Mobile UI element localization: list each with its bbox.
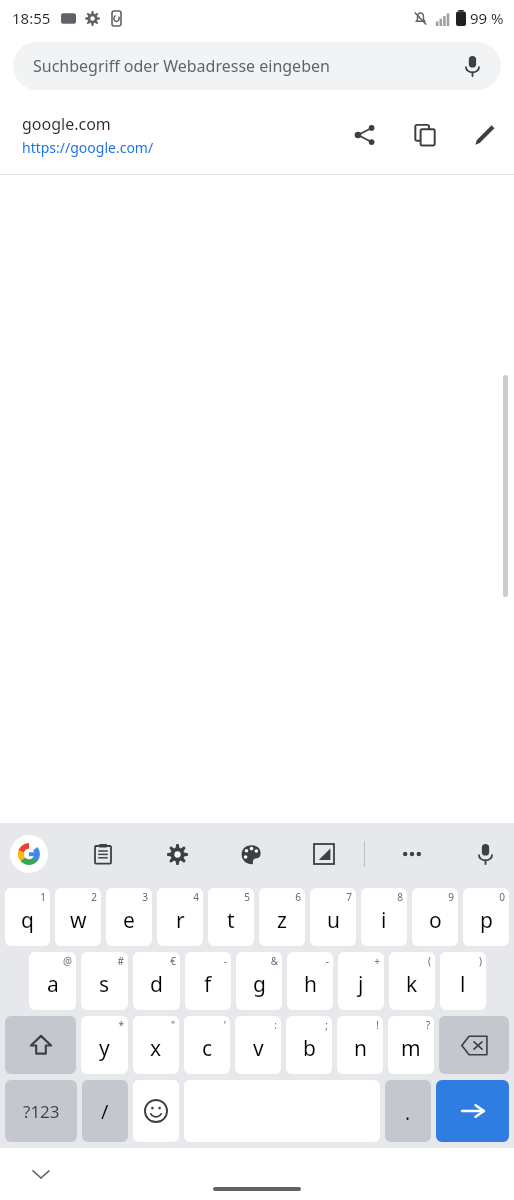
staticText: / [101,1098,109,1125]
staticText: ?123 [23,1100,60,1123]
button[interactable]: 6 [259,888,305,946]
staticText: l [460,970,466,999]
button[interactable]: ?123 [5,1080,77,1142]
staticText: ( [428,954,431,968]
staticText: r [176,906,185,935]
button[interactable]: Mehr [393,835,431,873]
staticText: ? [425,1018,430,1032]
staticText: o [429,906,442,935]
staticText: d [150,970,163,999]
staticText: n [354,1034,367,1063]
button[interactable]: 0 [463,888,509,946]
button[interactable]: Los [436,1080,509,1142]
button[interactable]: - [185,952,231,1010]
staticText: 18:55 [12,8,51,28]
button[interactable]: @ [29,952,76,1010]
staticText: 1 [40,890,46,904]
staticText: a [47,970,59,999]
staticText: 9 [448,890,454,904]
staticText: x [150,1034,162,1063]
staticText: - [223,954,227,968]
staticText: c [202,1034,213,1063]
staticText: - [325,954,329,968]
button[interactable]: ' [184,1016,230,1074]
button[interactable]: 9 [412,888,458,946]
staticText: . [405,1100,411,1126]
button[interactable]: Sprachsuche [457,51,487,81]
staticText: z [277,906,287,935]
staticText: u [327,906,340,935]
staticText: 5 [244,890,250,904]
button[interactable]: Einhandmodus [305,835,343,873]
staticText: v [253,1034,264,1063]
staticText: " [170,1018,175,1032]
staticText: w [70,906,87,935]
button[interactable]: Emoji [133,1080,179,1142]
button[interactable]: 1 [5,888,50,946]
button[interactable]: - [287,952,333,1010]
staticText: b [303,1034,316,1063]
staticText: 99 % [470,8,504,28]
staticText: : [274,1018,277,1032]
button[interactable]: # [81,952,128,1010]
staticText: h [304,970,317,999]
button[interactable]: ( [389,952,435,1010]
staticText: g [253,970,266,999]
staticText: t [227,906,235,935]
button[interactable]: ; [286,1016,332,1074]
button[interactable]: : [235,1016,281,1074]
staticText: ! [376,1018,379,1032]
button[interactable]: 7 [310,888,356,946]
staticText: https://google.com/ [22,138,154,157]
button[interactable]: Umschalttaste [5,1016,76,1074]
staticText: ; [325,1018,328,1032]
button[interactable]: * [81,1016,128,1074]
staticText: 6 [295,890,301,904]
staticText: € [170,954,176,968]
button[interactable]: Kopieren [406,116,444,154]
staticText: i [381,906,387,935]
button[interactable]: Google [10,835,48,873]
button[interactable]: Löschen [439,1016,509,1074]
button[interactable]: ! [337,1016,383,1074]
button[interactable]: Suchbegriff oder Webadresse eingeben [13,42,501,90]
staticText: j [358,970,364,999]
button[interactable]: + [338,952,384,1010]
button[interactable]: / [82,1080,128,1142]
button[interactable]: 4 [157,888,203,946]
staticText: s [99,970,110,999]
staticText: ) [479,954,482,968]
button[interactable]: google.com [0,96,514,174]
staticText: k [406,970,418,999]
staticText: 2 [91,890,97,904]
staticText: google.com [22,113,111,135]
staticText: f [204,970,212,999]
button[interactable]: " [133,1016,179,1074]
button[interactable]: 3 [106,888,152,946]
button[interactable]: Design [232,835,270,873]
staticText: e [123,906,135,935]
button[interactable]: € [133,952,180,1010]
button[interactable]: Spracheingabe [466,835,504,873]
staticText: 0 [499,890,505,904]
button[interactable]: Teilen [346,116,384,154]
staticText: ' [223,1018,226,1032]
staticText: Suchbegriff oder Webadresse eingeben [33,55,457,77]
button[interactable]: Zwischenablage [84,835,122,873]
button[interactable]: Einstellungen [158,835,196,873]
button[interactable]: Tastatur schließen [28,1161,54,1187]
button[interactable]: 8 [361,888,407,946]
button[interactable]: Bearbeiten [466,116,504,154]
staticText: @ [63,954,72,968]
staticText: m [401,1034,421,1063]
button[interactable]: 5 [208,888,254,946]
button[interactable]: & [236,952,282,1010]
button[interactable]: 2 [55,888,101,946]
staticText: 7 [346,890,352,904]
button[interactable]: ? [388,1016,434,1074]
button[interactable]: ) [440,952,486,1010]
staticText: y [99,1034,110,1063]
staticText: * [118,1018,124,1032]
button[interactable]: . [385,1080,431,1142]
